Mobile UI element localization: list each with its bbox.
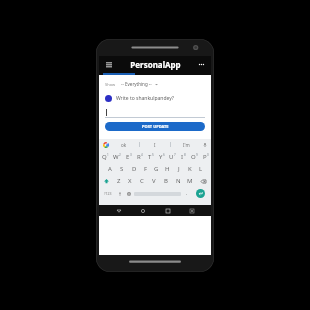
button[interactable]: R — [134, 151, 145, 163]
button[interactable]: W — [111, 151, 123, 163]
button[interactable]: Emoji — [124, 187, 134, 200]
staticText: M — [187, 177, 193, 185]
button[interactable]: Home — [137, 205, 148, 216]
button[interactable]: More options — [195, 58, 208, 71]
staticText: POST UPDATE — [142, 124, 169, 129]
button[interactable]: L — [195, 163, 206, 175]
staticText: -- Everything -- — [121, 81, 152, 87]
staticText: 9 — [196, 153, 198, 157]
button[interactable]: Profile picture — [105, 95, 112, 102]
button[interactable]: O — [189, 151, 200, 163]
staticText: 3 — [130, 153, 132, 157]
button[interactable]: Y — [156, 151, 167, 163]
staticText: G — [154, 165, 159, 173]
button[interactable]: M — [184, 175, 196, 187]
staticText: C — [140, 177, 144, 185]
button[interactable]: S — [116, 163, 128, 175]
staticText: R — [137, 153, 141, 161]
staticText: A — [108, 165, 112, 173]
staticText: 0 — [207, 153, 209, 157]
staticText: Show — [105, 82, 116, 87]
staticText: Q — [102, 153, 107, 161]
staticText: Y — [159, 153, 163, 161]
staticText: I — [181, 153, 184, 161]
staticText: F — [144, 165, 148, 173]
button[interactable]: ok — [109, 139, 139, 150]
staticText: O — [191, 153, 196, 161]
staticText: B — [164, 177, 168, 185]
button[interactable]: POST UPDATE — [105, 122, 205, 131]
button[interactable]: . — [181, 187, 192, 200]
staticText: S — [120, 165, 124, 173]
button[interactable]: Q — [99, 151, 111, 163]
button[interactable]: N — [172, 175, 184, 187]
button[interactable]: I'm — [171, 139, 201, 150]
staticText: . — [186, 190, 188, 197]
button[interactable]: E — [123, 151, 134, 163]
staticText: 5 — [152, 153, 154, 157]
staticText: H — [165, 165, 170, 173]
button[interactable]: P — [200, 151, 211, 163]
staticText: Z — [117, 177, 121, 185]
button[interactable]: T — [145, 151, 156, 163]
button[interactable]: Recent apps — [162, 205, 173, 216]
staticText: K — [188, 165, 192, 173]
staticText: E — [126, 153, 130, 161]
staticText: 8 — [184, 153, 186, 157]
button[interactable]: Z — [113, 175, 124, 187]
staticText: PersonalApp — [130, 59, 181, 70]
button[interactable]: Sticker — [115, 187, 124, 200]
button[interactable]: J — [173, 163, 184, 175]
button[interactable]: Enter — [192, 187, 209, 200]
button[interactable]: A — [104, 163, 116, 175]
staticText: J — [178, 165, 180, 173]
staticText: T — [148, 153, 152, 161]
staticText: I — [154, 142, 156, 148]
staticText: ok — [121, 142, 127, 148]
button[interactable]: V — [148, 175, 160, 187]
staticText: I'm — [183, 142, 190, 148]
button[interactable]: K — [184, 163, 195, 175]
staticText: 2 — [119, 153, 121, 157]
staticText: L — [199, 165, 203, 173]
button[interactable]: Voice input — [201, 141, 208, 148]
button[interactable]: -- Everything -- — [121, 81, 158, 87]
staticText: Write to shankulpandey? — [116, 95, 175, 102]
staticText: W — [113, 153, 119, 161]
button[interactable]: U — [167, 151, 178, 163]
staticText: 7 — [174, 153, 176, 157]
button[interactable]: Open navigation menu — [102, 58, 115, 71]
button[interactable] — [105, 107, 205, 118]
button[interactable]: C — [136, 175, 148, 187]
button[interactable]: D — [128, 163, 140, 175]
staticText: N — [176, 177, 181, 185]
button[interactable]: B — [160, 175, 172, 187]
staticText: P — [203, 153, 207, 161]
button[interactable]: Back — [113, 205, 124, 216]
button[interactable]: Symbols — [101, 187, 115, 200]
button[interactable]: H — [162, 163, 173, 175]
button[interactable]: Backspace — [196, 175, 211, 187]
button[interactable]: Shift — [99, 175, 113, 187]
staticText: ?123 — [104, 191, 112, 196]
button[interactable]: Google search — [102, 141, 109, 148]
staticText: X — [128, 177, 132, 185]
staticText: 4 — [141, 153, 143, 157]
staticText: U — [169, 153, 174, 161]
button[interactable]: G — [151, 163, 162, 175]
button[interactable]: F — [140, 163, 151, 175]
button[interactable]: Screenshot — [186, 205, 197, 216]
staticText: 6 — [163, 153, 165, 157]
staticText: D — [132, 165, 137, 173]
staticText: 1 — [107, 153, 109, 157]
button[interactable]: I — [140, 139, 170, 150]
staticText: V — [152, 177, 156, 185]
button[interactable]: I — [178, 151, 189, 163]
button[interactable]: X — [124, 175, 136, 187]
